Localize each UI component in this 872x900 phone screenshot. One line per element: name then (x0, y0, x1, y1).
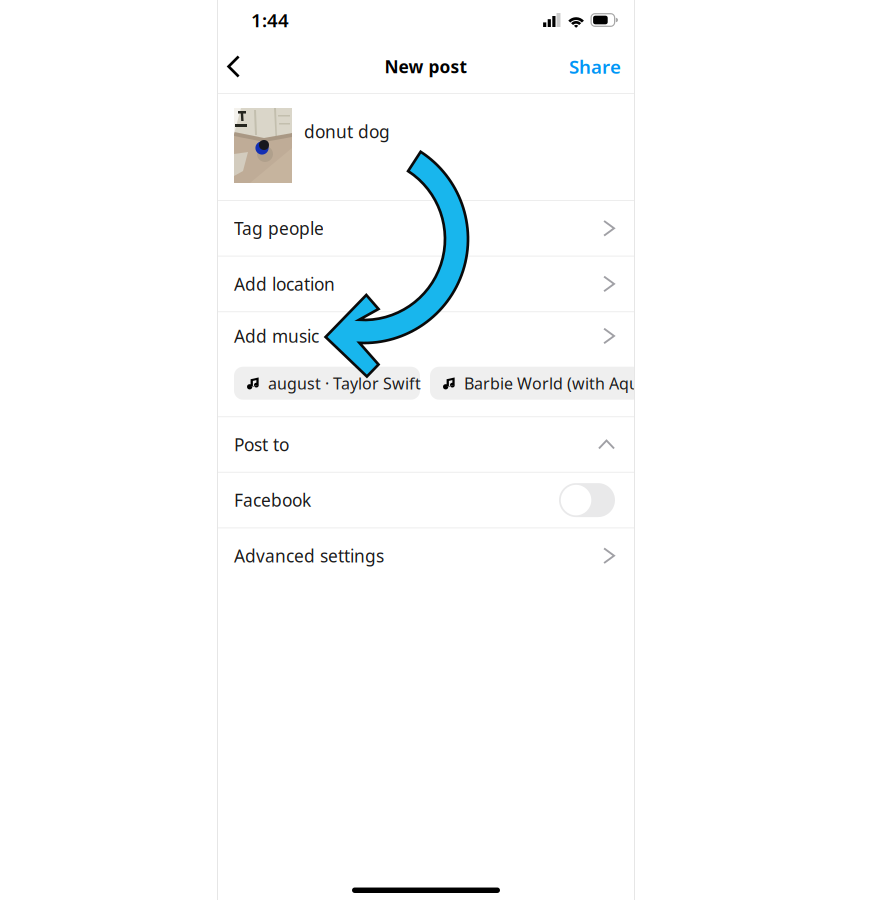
staticText: Facebook (234, 489, 311, 512)
staticText: Share (569, 54, 621, 79)
staticText: Post to (234, 433, 289, 456)
staticText: donut dog (304, 120, 390, 143)
staticText: Advanced settings (234, 544, 384, 567)
staticText: august · Taylor Swift (268, 373, 421, 394)
button[interactable]: Share (563, 43, 627, 90)
button[interactable]: Add location (217, 257, 635, 311)
button[interactable]: Facebook (217, 473, 635, 527)
button[interactable]: Advanced settings (217, 528, 635, 583)
button[interactable]: Back (217, 43, 250, 90)
staticText: Tag people (234, 217, 324, 240)
button[interactable]: Tag people (217, 201, 635, 256)
button[interactable]: august · Taylor Swift (234, 367, 420, 400)
staticText: Add music (234, 324, 319, 347)
button[interactable]: Add music (217, 312, 635, 360)
staticText: 1:44 (251, 8, 289, 32)
staticText: Barbie World (with Aqua (464, 373, 648, 394)
button[interactable]: Barbie World (with Aqua (430, 367, 642, 400)
staticText: Add location (234, 272, 335, 295)
button[interactable]: Post to (217, 417, 635, 472)
staticText: New post (384, 55, 467, 78)
